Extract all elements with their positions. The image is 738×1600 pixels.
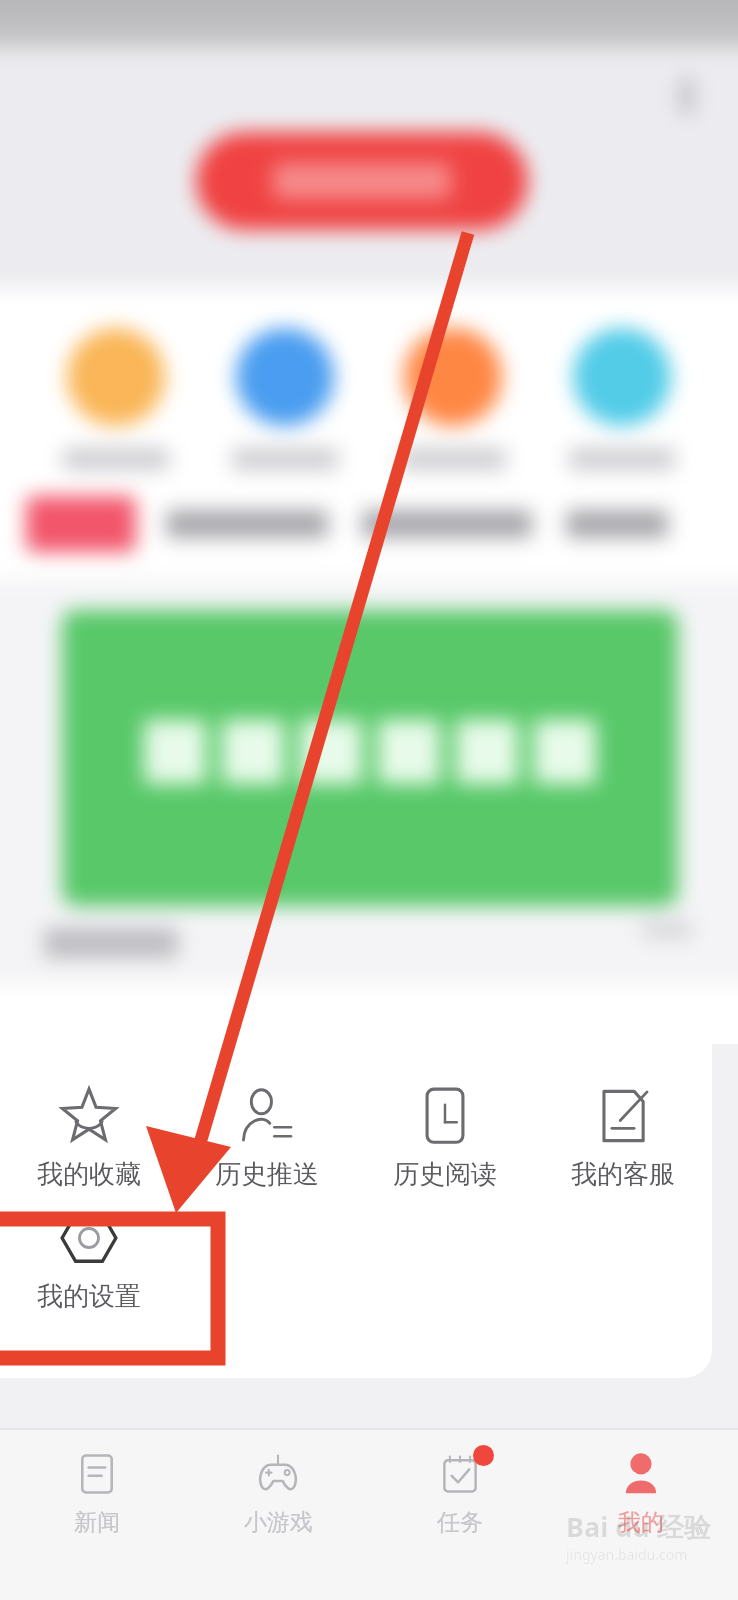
staticText: 我的客服 <box>571 1158 675 1191</box>
button[interactable]: 新闻 <box>13 1448 181 1537</box>
staticText: 历史推送 <box>215 1158 319 1191</box>
staticText: 小游戏 <box>244 1508 313 1537</box>
staticText: 历史阅读 <box>393 1158 497 1191</box>
button[interactable]: 历史阅读 <box>356 1088 534 1191</box>
staticText: 任务 <box>437 1508 483 1537</box>
button[interactable]: 小游戏 <box>194 1448 362 1537</box>
staticText: jingyan.baidu.com <box>566 1545 688 1564</box>
staticText: 我的设置 <box>37 1280 141 1313</box>
button[interactable]: 任务 <box>376 1448 544 1537</box>
button[interactable]: 我的 <box>557 1448 725 1537</box>
staticText: 我的 <box>618 1508 664 1537</box>
staticText: 新闻 <box>74 1508 120 1537</box>
button[interactable]: 我的客服 <box>534 1088 712 1191</box>
staticText: Bai du 经验 <box>566 1508 711 1545</box>
button[interactable]: 我的收藏 <box>0 1088 178 1191</box>
staticText: 我的收藏 <box>37 1158 141 1191</box>
button[interactable]: 历史推送 <box>178 1088 356 1191</box>
button[interactable]: 我的设置 <box>0 1210 178 1313</box>
